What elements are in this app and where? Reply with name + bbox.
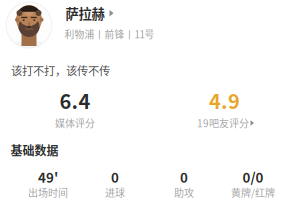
staticText: 4.9: [209, 86, 240, 115]
staticText: 0/0: [242, 167, 263, 187]
staticText: 0: [111, 167, 119, 187]
staticText: 萨拉赫: [65, 3, 104, 23]
staticText: 黄牌/红牌: [231, 185, 275, 200]
staticText: 该打不打，该传不传: [11, 62, 110, 79]
staticText: 0: [180, 167, 188, 187]
button[interactable]: 4.9: [184, 89, 264, 133]
staticText: 媒体评分: [55, 116, 95, 130]
staticText: 49': [38, 167, 58, 187]
staticText: 出场时间: [28, 185, 68, 200]
staticText: 利物浦丨前锋丨11号: [64, 27, 154, 41]
staticText: 进球: [105, 185, 125, 200]
button[interactable]: 萨拉赫: [65, 3, 115, 23]
staticText: 6.4: [59, 86, 90, 115]
staticText: 基础数据: [11, 141, 59, 159]
staticText: 19吧友评分: [197, 116, 249, 130]
staticText: 助攻: [174, 185, 194, 200]
